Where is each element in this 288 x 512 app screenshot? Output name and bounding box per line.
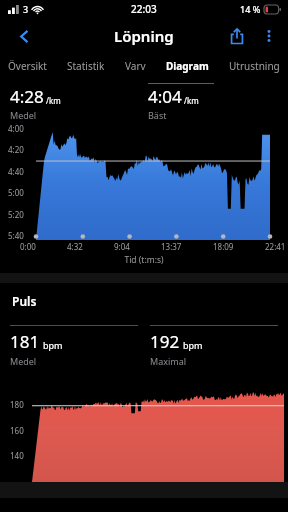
button[interactable]: Utrustning (225, 56, 284, 76)
button[interactable]: More options (254, 21, 284, 51)
staticText: Medel (10, 355, 37, 367)
staticText: Maximal (150, 355, 187, 367)
staticText: Bäst (148, 109, 167, 121)
staticText: Översikt (8, 59, 47, 73)
staticText: 22:03 (131, 2, 157, 16)
staticText: 180 (10, 399, 24, 410)
button[interactable]: Share (220, 19, 254, 53)
staticText: 4:04 (148, 85, 182, 108)
button[interactable]: Diagram (162, 56, 213, 76)
staticText: bpm (43, 339, 63, 351)
staticText: /km (184, 95, 199, 106)
staticText: Statistik (67, 59, 105, 73)
staticText: 181 (10, 330, 40, 353)
staticText: 22:41 (265, 241, 286, 252)
staticText: Puls (12, 293, 37, 309)
staticText: 9:04 (114, 241, 130, 252)
staticText: 4:00 (8, 123, 24, 134)
staticText: /km (46, 95, 61, 106)
staticText: 4:32 (67, 241, 83, 252)
staticText: 140 (10, 450, 24, 461)
staticText: Utrustning (229, 59, 280, 73)
staticText: 4:40 (8, 166, 24, 177)
staticText: bpm (183, 339, 203, 351)
staticText: 14 % (240, 3, 261, 15)
staticText: 192 (150, 330, 180, 353)
staticText: 18:09 (213, 241, 234, 252)
staticText: 0:00 (20, 241, 36, 252)
staticText: 4:20 (8, 144, 24, 155)
staticText: Tid (t:m:s) (0, 254, 288, 266)
staticText: 13:37 (161, 241, 182, 252)
staticText: 4:28 (10, 85, 44, 108)
staticText: Diagram (166, 59, 209, 73)
button[interactable]: Varv (121, 56, 150, 76)
staticText: 5:20 (8, 209, 24, 220)
staticText: 5:00 (8, 187, 24, 198)
staticText: Varv (125, 59, 146, 73)
staticText: 3 (23, 3, 29, 15)
button[interactable]: Statistik (63, 56, 109, 76)
staticText: 5:40 (8, 230, 24, 241)
staticText: Löpning (114, 26, 174, 46)
button[interactable]: Back (6, 18, 42, 54)
button[interactable]: Översikt (4, 56, 51, 76)
staticText: 160 (10, 425, 24, 436)
staticText: Medel (10, 109, 37, 121)
